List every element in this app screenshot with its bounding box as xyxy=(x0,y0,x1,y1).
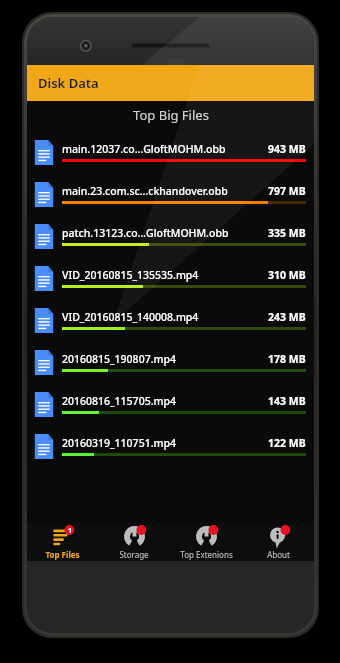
staticText: 943 MB xyxy=(268,142,306,156)
button[interactable]: Top Extenions xyxy=(170,523,242,561)
button[interactable]: About xyxy=(242,523,314,561)
button[interactable]: patch.13123.co…GloftMOHM.obb xyxy=(27,215,314,257)
staticText: 20160815_190807.mp4 xyxy=(62,352,268,366)
staticText: 143 MB xyxy=(268,394,306,408)
staticText: 178 MB xyxy=(268,352,306,366)
staticText: Storage xyxy=(119,549,149,560)
button[interactable]: Storage xyxy=(98,523,170,561)
staticText: 122 MB xyxy=(268,436,306,450)
staticText: main.12037.co…GloftMOHM.obb xyxy=(62,142,268,156)
staticText: 243 MB xyxy=(268,310,306,324)
button[interactable]: VID_20160815_140008.mp4 xyxy=(27,299,314,341)
staticText: VID_20160815_140008.mp4 xyxy=(62,310,268,324)
staticText: About xyxy=(267,549,290,560)
button[interactable]: VID_20160815_135535.mp4 xyxy=(27,257,314,299)
staticText: 335 MB xyxy=(268,226,306,240)
staticText: 797 MB xyxy=(268,184,306,198)
button[interactable]: main.12037.co…GloftMOHM.obb xyxy=(27,131,314,173)
button[interactable]: 20160319_110751.mp4 xyxy=(27,425,314,467)
button[interactable]: Disk Data xyxy=(27,65,314,101)
button[interactable]: Top Files xyxy=(27,523,98,561)
staticText: Top Extenions xyxy=(180,549,233,560)
staticText: patch.13123.co…GloftMOHM.obb xyxy=(62,226,268,240)
staticText: Top Files xyxy=(45,549,80,560)
staticText: 20160319_110751.mp4 xyxy=(62,436,268,450)
staticText: 310 MB xyxy=(268,268,306,282)
staticText: 20160816_115705.mp4 xyxy=(62,394,268,408)
staticText: main.23.com.sc…ckhandover.obb xyxy=(62,184,268,198)
button[interactable]: 20160816_115705.mp4 xyxy=(27,383,314,425)
staticText: 1 xyxy=(68,526,73,536)
staticText: Top Big Files xyxy=(133,106,209,124)
staticText: Disk Data xyxy=(38,74,99,92)
staticText: VID_20160815_135535.mp4 xyxy=(62,268,268,282)
button[interactable]: 20160815_190807.mp4 xyxy=(27,341,314,383)
button[interactable]: main.23.com.sc…ckhandover.obb xyxy=(27,173,314,215)
